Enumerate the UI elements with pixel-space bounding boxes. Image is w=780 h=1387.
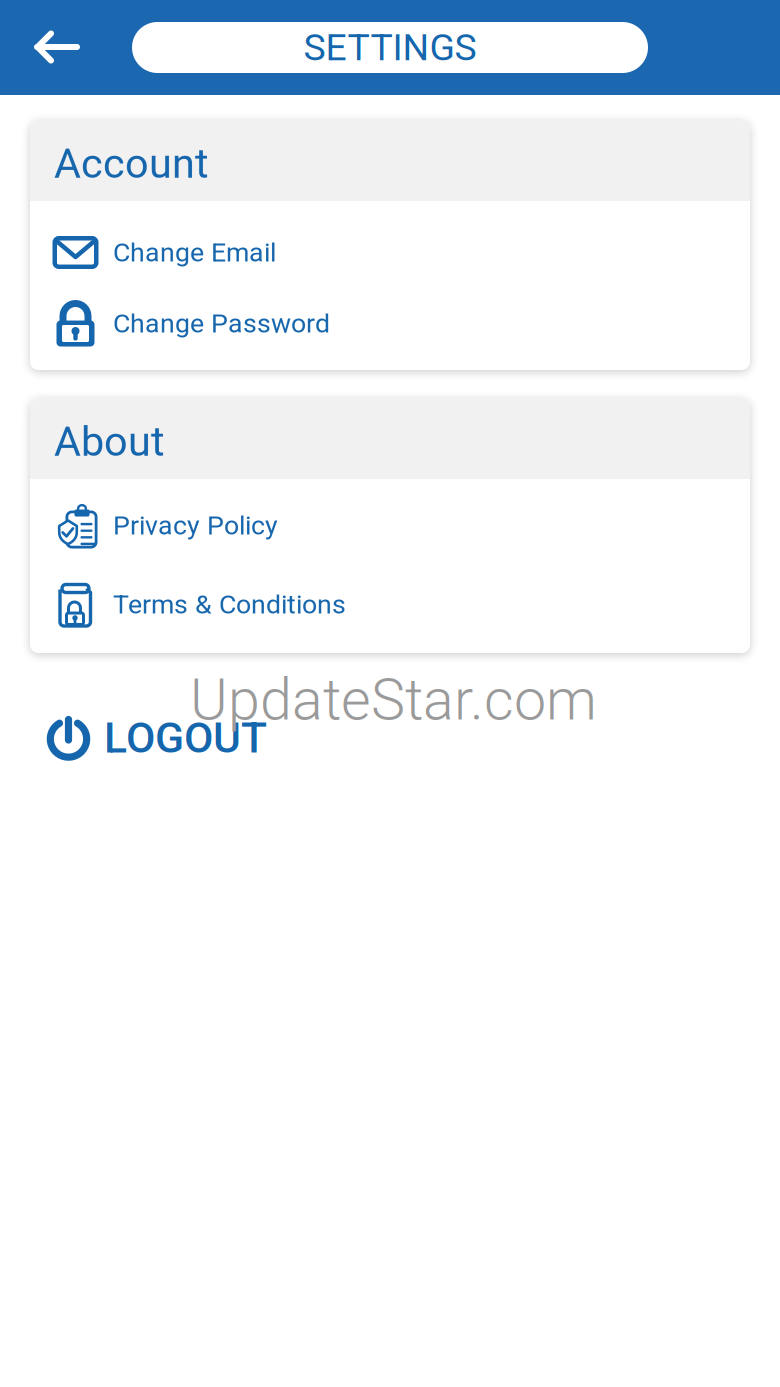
staticText: About (54, 417, 165, 466)
staticText: LOGOUT (104, 713, 267, 763)
staticText: Change Email (113, 237, 276, 268)
staticText: UpdateStar.com (190, 666, 597, 734)
staticText: Privacy Policy (113, 510, 278, 541)
button[interactable]: Change Password (30, 288, 750, 359)
button[interactable]: Privacy Policy (30, 486, 750, 565)
staticText: SETTINGS (303, 26, 476, 69)
button[interactable]: Change Email (30, 217, 750, 288)
button[interactable]: Back (0, 0, 120, 95)
button[interactable]: LOGOUT (0, 694, 780, 782)
button[interactable]: Terms & Conditions (30, 565, 750, 644)
staticText: Change Password (113, 308, 330, 339)
staticText: Account (54, 139, 209, 188)
staticText: Terms & Conditions (113, 589, 346, 620)
